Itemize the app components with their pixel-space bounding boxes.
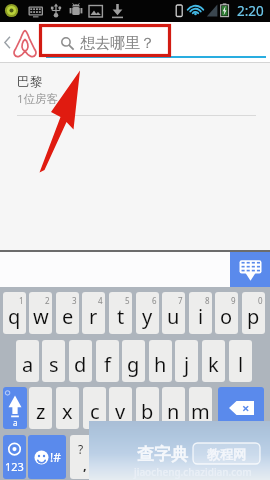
button[interactable]: e bbox=[56, 292, 79, 334]
staticText: v bbox=[115, 398, 126, 425]
button[interactable]: Space bbox=[95, 435, 213, 479]
staticText: u bbox=[167, 303, 180, 330]
staticText: x bbox=[62, 398, 73, 425]
button[interactable]: f bbox=[96, 340, 119, 382]
staticText: c bbox=[90, 398, 100, 425]
staticText: g bbox=[127, 351, 140, 378]
button[interactable]: z bbox=[29, 387, 52, 429]
button[interactable]: Hide keyboard bbox=[230, 252, 270, 287]
staticText: m bbox=[191, 398, 210, 425]
staticText: 2:20 bbox=[237, 2, 264, 20]
button[interactable]: Shift bbox=[3, 387, 27, 429]
staticText: o bbox=[220, 303, 233, 330]
staticText: b bbox=[141, 398, 154, 425]
button[interactable]: q bbox=[3, 292, 26, 334]
button[interactable]: x bbox=[56, 387, 79, 429]
button[interactable]: Enter bbox=[217, 435, 268, 479]
staticText: 7 bbox=[178, 295, 183, 306]
staticText: 2 bbox=[45, 295, 50, 306]
staticText: i bbox=[198, 303, 204, 330]
staticText: 5 bbox=[125, 295, 130, 306]
staticText: 1位房客 bbox=[17, 91, 59, 107]
staticText: a bbox=[13, 417, 18, 428]
button[interactable]: Airbnb home bbox=[10, 24, 40, 60]
staticText: n bbox=[167, 398, 180, 425]
staticText: f bbox=[104, 351, 111, 378]
button[interactable]: j bbox=[175, 340, 198, 382]
button[interactable]: o bbox=[215, 292, 238, 334]
staticText: w bbox=[33, 303, 49, 330]
staticText: t bbox=[117, 303, 125, 330]
staticText: p bbox=[247, 303, 260, 330]
button[interactable]: Emoji bbox=[28, 435, 66, 479]
button[interactable]: n bbox=[162, 387, 185, 429]
button[interactable]: Punctuation bbox=[70, 435, 92, 479]
staticText: !# bbox=[50, 449, 61, 465]
button[interactable]: g bbox=[122, 340, 145, 382]
button[interactable]: Numbers and symbols bbox=[3, 435, 26, 479]
button[interactable]: b bbox=[136, 387, 159, 429]
staticText: z bbox=[36, 398, 46, 425]
staticText: q bbox=[8, 303, 21, 330]
staticText: 3 bbox=[72, 295, 77, 306]
staticText: 1 bbox=[19, 295, 24, 306]
staticText: , bbox=[83, 456, 87, 474]
staticText: 0 bbox=[258, 295, 263, 306]
staticText: 8 bbox=[205, 295, 210, 306]
staticText: j bbox=[184, 351, 190, 378]
staticText: a bbox=[22, 351, 34, 378]
staticText: y bbox=[142, 303, 153, 330]
button[interactable]: u bbox=[162, 292, 185, 334]
button[interactable]: a bbox=[16, 340, 39, 382]
staticText: 查字典 bbox=[137, 444, 188, 465]
staticText: ? bbox=[78, 441, 84, 457]
staticText: 想去哪里？ bbox=[80, 34, 155, 53]
staticText: e bbox=[62, 303, 74, 330]
button[interactable]: k bbox=[202, 340, 225, 382]
button[interactable]: h bbox=[149, 340, 172, 382]
staticText: r bbox=[89, 303, 98, 330]
button[interactable]: 巴黎 bbox=[0, 63, 270, 115]
staticText: × bbox=[242, 399, 250, 417]
staticText: h bbox=[154, 351, 167, 378]
staticText: 9 bbox=[231, 295, 236, 306]
button[interactable]: s bbox=[42, 340, 65, 382]
staticText: 6 bbox=[152, 295, 157, 306]
staticText: 教程网 bbox=[207, 446, 246, 462]
staticText: d bbox=[74, 351, 87, 378]
button[interactable]: r bbox=[82, 292, 105, 334]
staticText: 巴黎 bbox=[17, 73, 43, 89]
button[interactable]: i bbox=[189, 292, 212, 334]
button[interactable]: l bbox=[229, 340, 252, 382]
button[interactable]: y bbox=[136, 292, 159, 334]
button[interactable]: Backspace bbox=[218, 387, 264, 429]
button[interactable]: Back bbox=[0, 22, 14, 62]
button[interactable]: w bbox=[29, 292, 52, 334]
staticText: jiaocheng.chazidian.com bbox=[134, 465, 252, 479]
button[interactable]: 想去哪里？ bbox=[44, 22, 264, 62]
button[interactable]: v bbox=[109, 387, 132, 429]
staticText: 4 bbox=[98, 295, 103, 306]
button[interactable]: m bbox=[189, 387, 212, 429]
button[interactable]: p bbox=[242, 292, 265, 334]
button[interactable]: d bbox=[69, 340, 92, 382]
button[interactable]: t bbox=[109, 292, 132, 334]
staticText: k bbox=[208, 351, 219, 378]
staticText: s bbox=[49, 351, 59, 378]
staticText: 123 bbox=[5, 459, 24, 474]
button[interactable]: c bbox=[83, 387, 106, 429]
staticText: l bbox=[238, 351, 244, 378]
